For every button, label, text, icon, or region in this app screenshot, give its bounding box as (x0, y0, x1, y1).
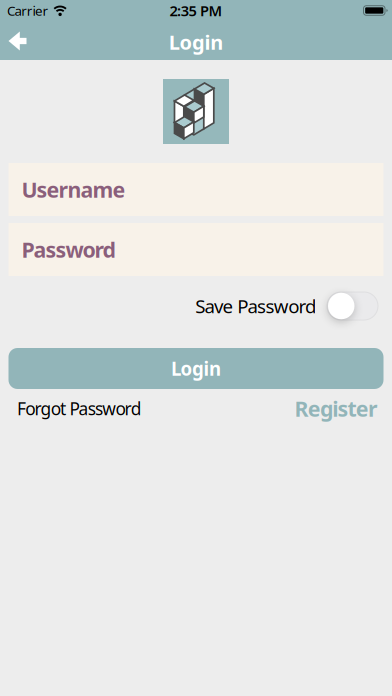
staticText: Login (171, 356, 221, 381)
button[interactable]: Forgot Password (17, 397, 142, 420)
staticText: Carrier (7, 2, 49, 19)
button[interactable]: Save Password (327, 292, 378, 320)
staticText: Password (21, 235, 115, 264)
button[interactable]: Back (0, 31, 26, 52)
button[interactable]: Password (8, 223, 383, 276)
button[interactable]: Register (295, 394, 378, 423)
staticText: Save Password (195, 294, 316, 318)
button[interactable]: Login (8, 348, 383, 389)
staticText: Username (21, 175, 125, 204)
staticText: 2:35 PM (169, 1, 223, 20)
staticText: Login (169, 29, 223, 55)
staticText: Forgot Password (17, 397, 142, 420)
button[interactable]: Username (8, 163, 383, 216)
staticText: Register (295, 394, 378, 423)
